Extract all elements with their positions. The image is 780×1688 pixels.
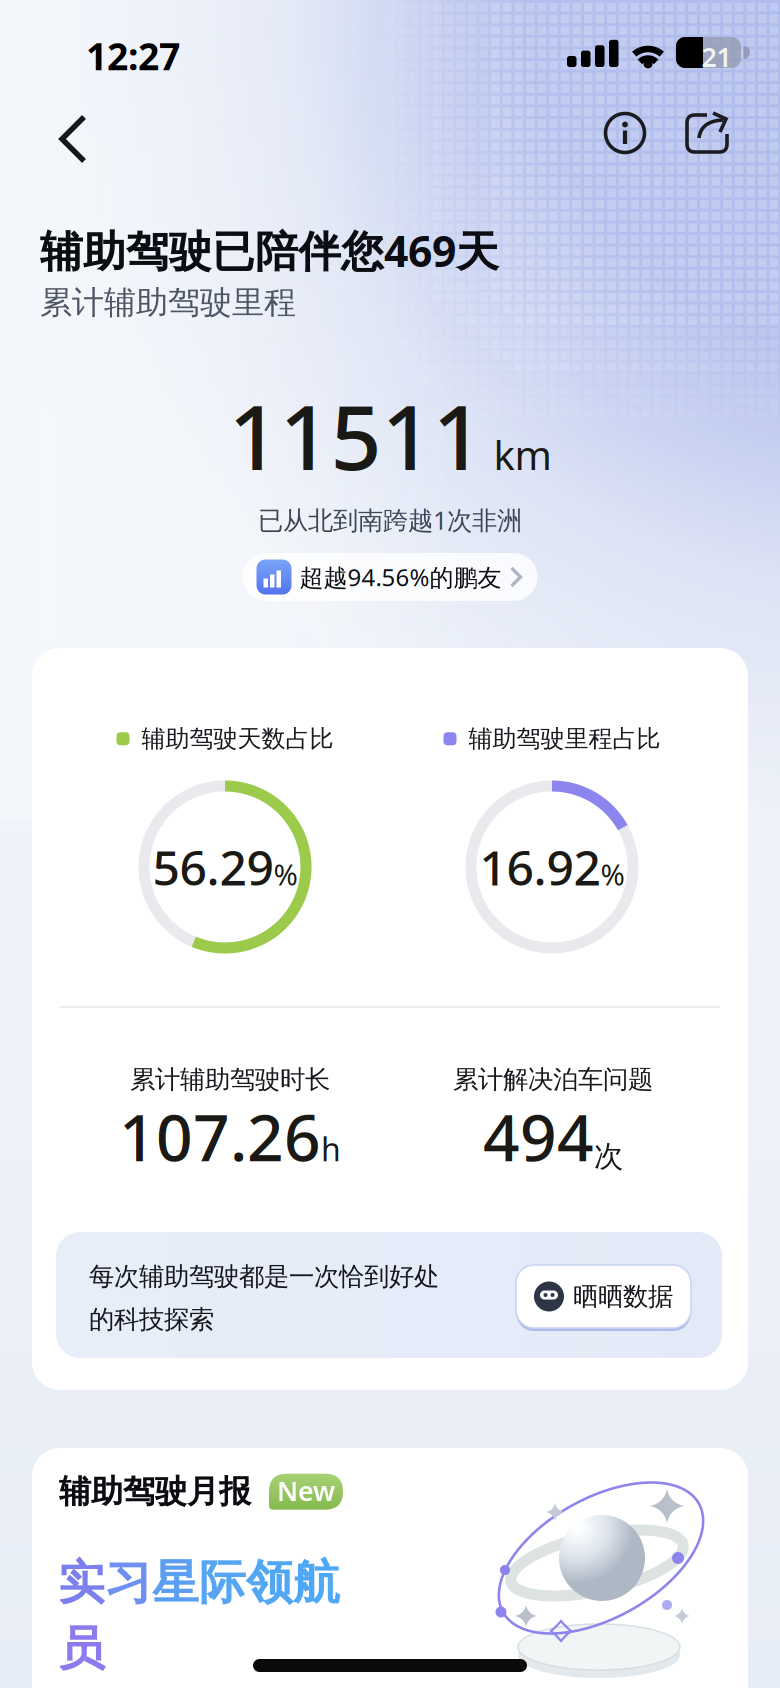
staticText: 习 (105, 1554, 152, 1611)
staticText: 晒晒数据 (573, 1281, 673, 1312)
button[interactable]: 超越94.56%的鹏友 (242, 553, 537, 601)
staticText: 辅助驾驶里程占比 (468, 724, 660, 753)
staticText: 累计辅助驾驶时长 (130, 1064, 330, 1095)
staticText: 领 (246, 1554, 293, 1611)
staticText: 累计解决泊车问题 (453, 1064, 653, 1095)
staticText: 员 (58, 1620, 105, 1677)
staticText: 16.92% (479, 835, 624, 899)
button[interactable]: Info (603, 111, 647, 155)
staticText: 航 (293, 1554, 340, 1611)
staticText: 辅助驾驶已陪伴您469天 (40, 222, 499, 279)
staticText: 494次 (483, 1094, 623, 1179)
staticText: 辅助驾驶月报 (59, 1472, 251, 1511)
staticText: 107.26h (119, 1094, 341, 1179)
staticText: New (277, 1473, 335, 1508)
staticText: 星 (152, 1554, 199, 1611)
staticText: 56.29% (152, 835, 297, 899)
staticText: 已从北到南跨越1次非洲 (258, 503, 522, 537)
staticText: 每次辅助驾驶都是一次恰到好处 (89, 1261, 439, 1292)
button[interactable]: 辅助驾驶月报 (32, 1448, 748, 1688)
button[interactable]: Share (685, 110, 731, 156)
staticText: 12:27 (86, 31, 180, 81)
staticText: 际 (199, 1554, 246, 1611)
staticText: 21 (701, 39, 731, 74)
button[interactable]: 晒晒数据 (516, 1265, 691, 1328)
staticText: 的科技探索 (89, 1304, 214, 1335)
staticText: 实 (58, 1554, 105, 1611)
staticText: 超越94.56%的鹏友 (299, 561, 501, 593)
staticText: 辅助驾驶天数占比 (141, 724, 333, 753)
button[interactable]: Back (44, 111, 104, 167)
staticText: 11511 km (228, 376, 551, 495)
staticText: 累计辅助驾驶里程 (40, 283, 296, 322)
